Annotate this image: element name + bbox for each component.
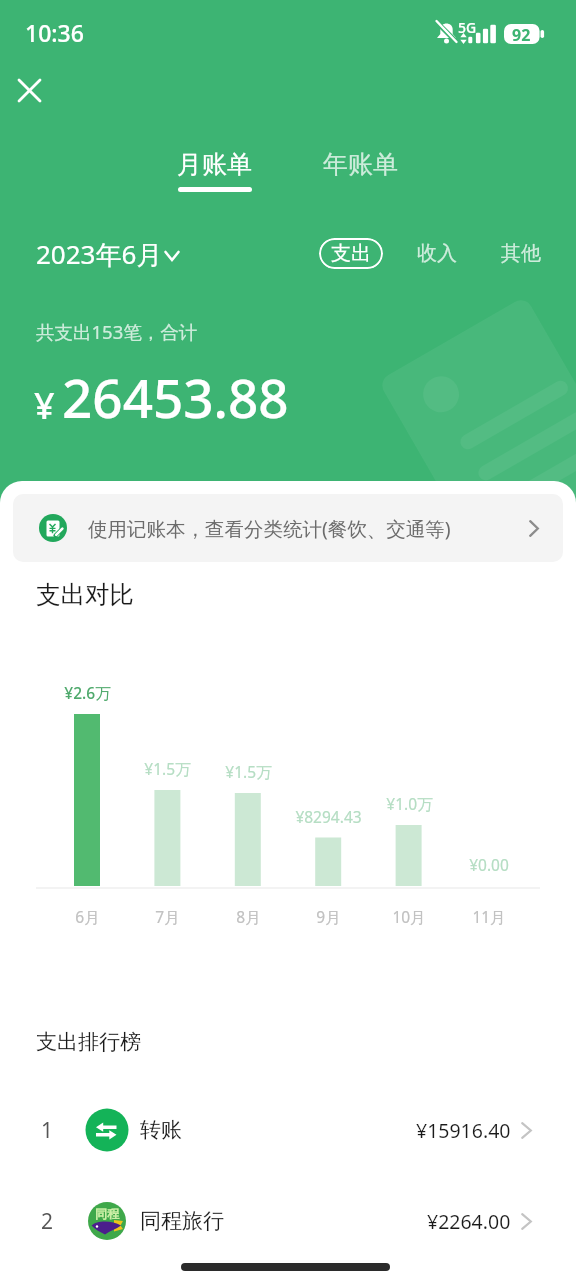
staticText: ¥2.6万 [64, 682, 111, 703]
staticText: 同程 [95, 1206, 119, 1221]
staticText: ¥15916.40 [416, 1117, 511, 1144]
staticText: 1 [41, 1116, 54, 1145]
staticText: ¥ [34, 381, 55, 430]
staticText: 5G [458, 18, 477, 37]
staticText: 2 [41, 1207, 54, 1236]
staticText: ¥1.5万 [144, 758, 191, 779]
staticText: 10:36 [25, 17, 84, 48]
staticText: 共支出153笔，合计 [36, 319, 198, 344]
staticText: 2023年6月 [36, 236, 163, 272]
button[interactable]: 月账单 [164, 149, 264, 199]
button[interactable]: 使用记账本，查看分类统计(餐饮、交通等) [13, 494, 563, 562]
staticText: ¥1.5万 [225, 761, 272, 782]
staticText: 收入 [417, 241, 457, 266]
staticText: 8月 [236, 906, 261, 927]
staticText: 同程旅行 [140, 1208, 224, 1234]
button[interactable]: 2 [0, 1176, 576, 1266]
button[interactable]: 年账单 [310, 149, 410, 189]
staticText: 92 [512, 24, 531, 44]
staticText: 使用记账本，查看分类统计(餐饮、交通等) [88, 515, 451, 542]
staticText: ¥0.00 [469, 854, 509, 875]
staticText: 月账单 [177, 149, 252, 180]
button[interactable]: 收入 [407, 238, 467, 269]
staticText: 26453.88 [62, 361, 289, 433]
staticText: 转账 [140, 1117, 182, 1143]
staticText: 11月 [472, 906, 506, 927]
staticText: 其他 [501, 241, 541, 266]
button[interactable]: 1 [0, 1085, 576, 1175]
button[interactable]: 支出 [319, 238, 383, 269]
staticText: ¥2264.00 [427, 1208, 511, 1235]
staticText: 6月 [75, 906, 100, 927]
button[interactable]: 其他 [491, 238, 551, 269]
button[interactable]: 2023年6月 [30, 236, 186, 272]
staticText: 10月 [392, 906, 426, 927]
staticText: 支出对比 [36, 579, 134, 610]
button[interactable]: Close [8, 69, 51, 112]
staticText: 支出 [331, 241, 371, 266]
staticText: 支出排行榜 [36, 1029, 141, 1055]
staticText: 年账单 [323, 149, 398, 180]
staticText: 9月 [316, 906, 341, 927]
staticText: ¥8294.43 [295, 806, 362, 827]
staticText: ¥1.0万 [386, 793, 433, 814]
staticText: 7月 [155, 906, 180, 927]
